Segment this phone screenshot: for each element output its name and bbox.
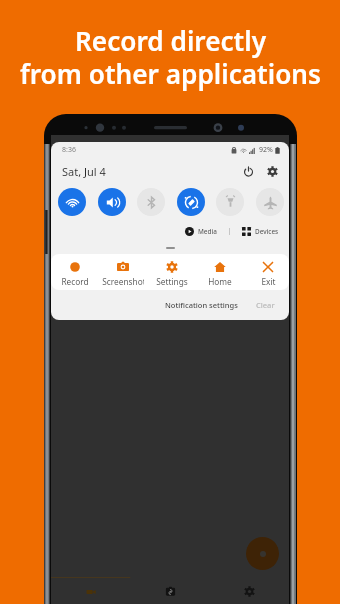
- button[interactable]: Record: [246, 537, 279, 570]
- staticText: Clear: [256, 300, 275, 310]
- button[interactable]: Exit: [247, 254, 289, 289]
- staticText: Home: [208, 276, 232, 287]
- staticText: Media: [198, 227, 217, 236]
- button[interactable]: Media: [184, 227, 218, 236]
- staticText: Record directly from other applications: [20, 23, 321, 92]
- button[interactable]: Notification settings: [163, 297, 240, 313]
- staticText: Exit: [261, 276, 276, 287]
- staticText: Settings: [156, 276, 188, 287]
- button[interactable]: Settings: [264, 163, 280, 179]
- staticText: Screenshot: [102, 276, 144, 287]
- button[interactable]: Power: [240, 163, 256, 179]
- staticText: Devices: [255, 227, 279, 236]
- button[interactable]: Record: [54, 254, 96, 289]
- button[interactable]: Devices: [241, 227, 280, 236]
- button[interactable]: Airplane mode: [256, 188, 284, 216]
- button[interactable]: Flashlight: [216, 188, 244, 216]
- button[interactable]: Home: [199, 254, 241, 289]
- button[interactable]: Screenshots: [131, 578, 210, 604]
- button[interactable]: Screenshot: [102, 254, 144, 289]
- button[interactable]: Bluetooth: [137, 188, 165, 216]
- staticText: Record: [61, 276, 89, 287]
- staticText: 92%: [259, 145, 273, 155]
- button[interactable]: Clear: [254, 297, 277, 313]
- staticText: Notification settings: [165, 300, 238, 310]
- button[interactable]: Settings: [210, 578, 289, 604]
- staticText: 8:36: [62, 145, 76, 155]
- button[interactable]: Settings: [151, 254, 193, 289]
- button[interactable]: Videos: [51, 578, 131, 604]
- button[interactable]: Auto rotate: [177, 188, 205, 216]
- button[interactable]: Sound: [98, 188, 126, 216]
- staticText: Sat, Jul 4: [62, 164, 106, 179]
- button[interactable]: Wi-Fi: [58, 188, 86, 216]
